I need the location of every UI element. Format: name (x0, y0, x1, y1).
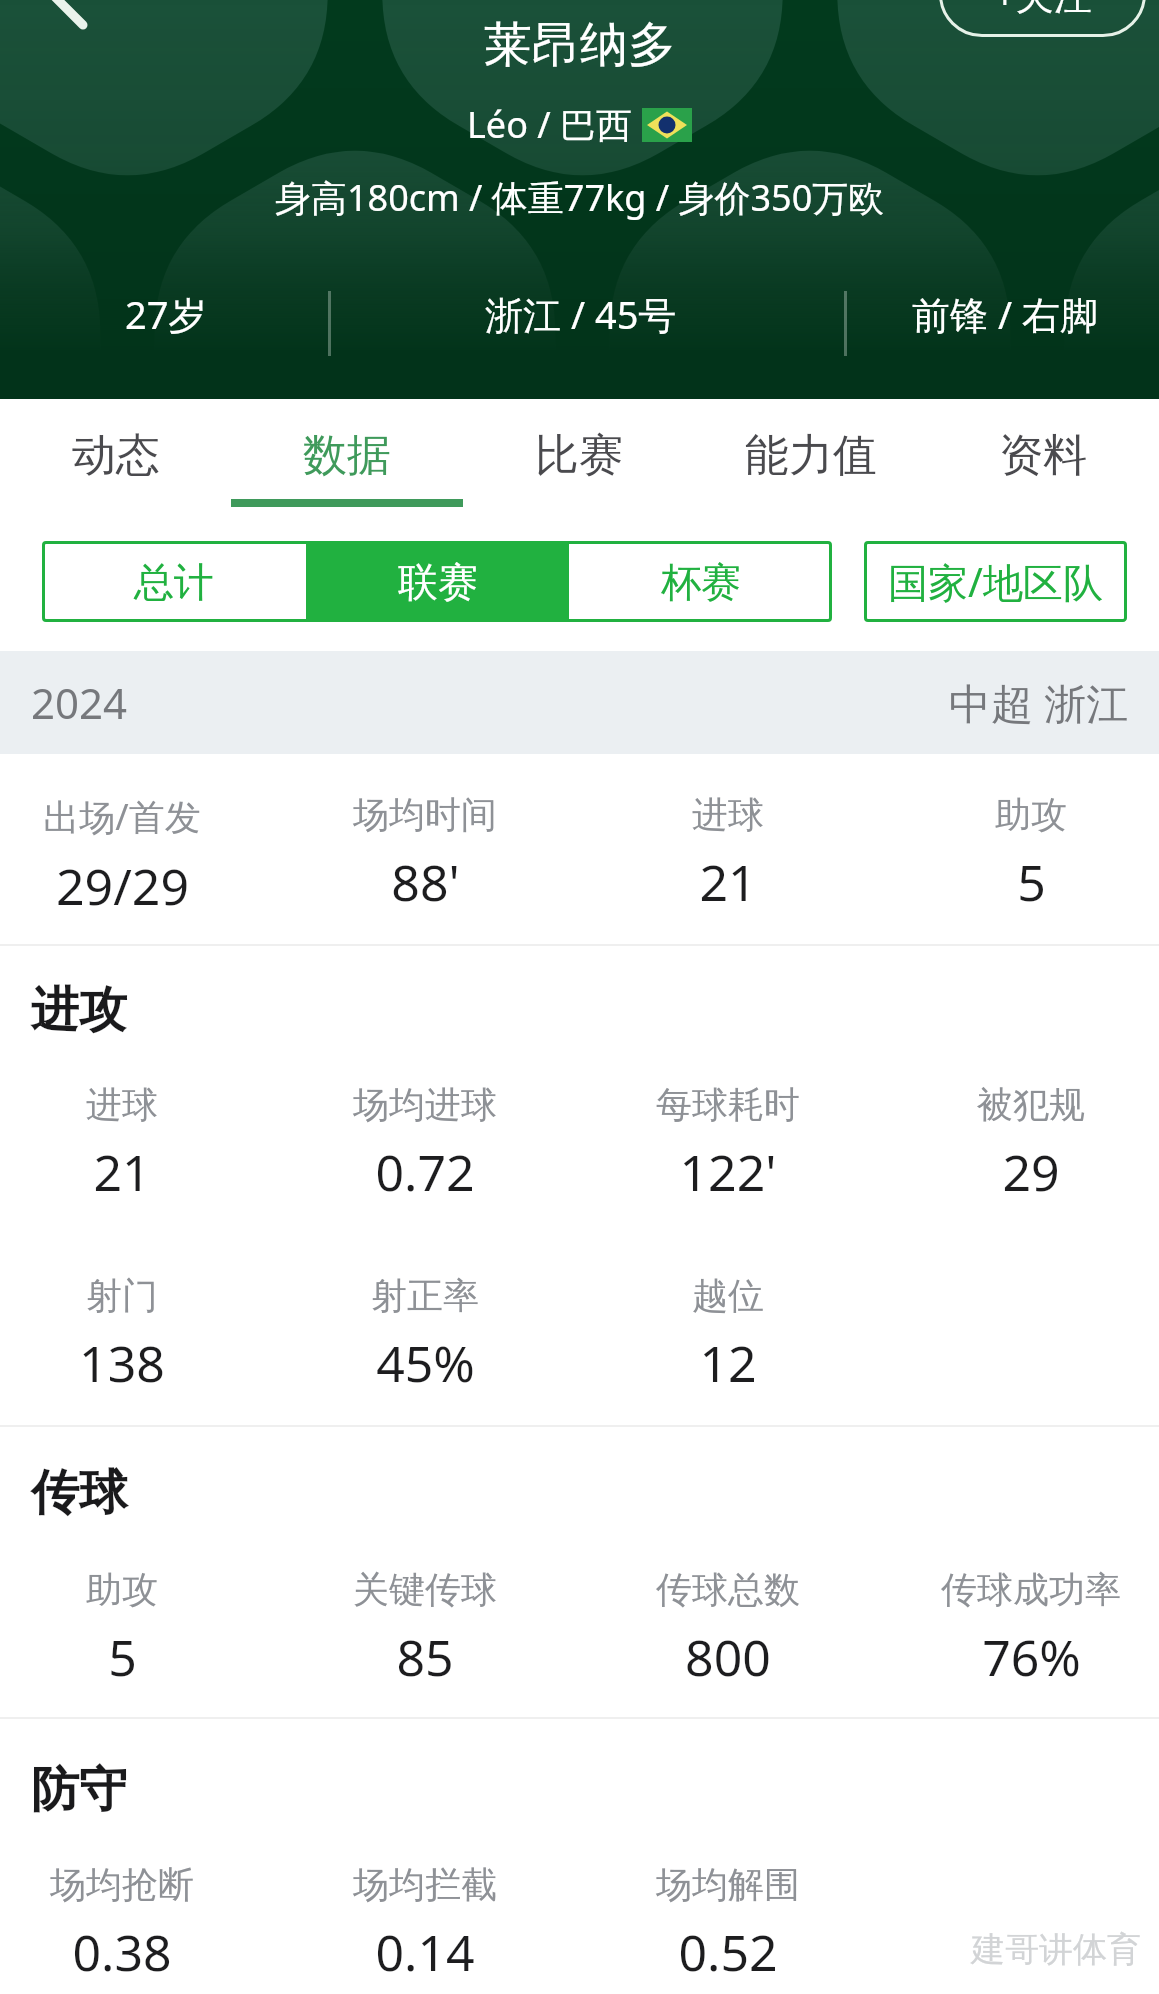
staticText: 0.14 (375, 1918, 475, 1986)
button[interactable]: 数据 (231, 399, 463, 511)
staticText: 12 (699, 1329, 757, 1397)
button[interactable]: 杯赛 (569, 541, 832, 622)
staticText: 数据 (303, 428, 391, 483)
staticText: 138 (79, 1329, 165, 1397)
staticText: 进球 (692, 792, 764, 837)
staticText: 进球 (86, 1082, 158, 1127)
button[interactable]: 国家/地区队 (864, 541, 1127, 622)
staticText: 防守 (31, 1760, 127, 1820)
staticText: 2024 (31, 674, 128, 731)
staticText: 27岁 (125, 288, 207, 340)
staticText: 88' (391, 848, 460, 916)
staticText: 场均抢断 (50, 1862, 194, 1907)
staticText: 建哥讲体育 (971, 1928, 1141, 1971)
staticText: 关键传球 (353, 1567, 497, 1612)
staticText: 场均拦截 (353, 1862, 497, 1907)
staticText: 助攻 (86, 1567, 158, 1612)
staticText: +关注 (994, 0, 1092, 20)
staticText: 85 (396, 1623, 454, 1691)
staticText: 资料 (999, 428, 1087, 483)
staticText: 122' (679, 1138, 777, 1206)
staticText: 中超 浙江 (949, 674, 1128, 731)
staticText: 杯赛 (661, 557, 741, 607)
staticText: 76% (982, 1623, 1081, 1691)
staticText: 5 (108, 1623, 137, 1691)
staticText: 助攻 (995, 792, 1067, 837)
staticText: 越位 (692, 1273, 764, 1318)
button[interactable]: 联赛 (306, 541, 569, 622)
button[interactable]: +关注 (939, 0, 1146, 37)
button[interactable]: 总计 (42, 541, 306, 622)
button[interactable]: 资料 (927, 399, 1159, 511)
staticText: 21 (699, 848, 757, 916)
staticText: 总计 (134, 557, 214, 607)
staticText: 800 (685, 1623, 771, 1691)
button[interactable]: Back (10, 0, 120, 28)
staticText: 浙江 / 45号 (485, 288, 677, 340)
staticText: 21 (93, 1138, 151, 1206)
staticText: 联赛 (398, 557, 478, 607)
staticText: 出场/首发 (43, 792, 201, 841)
staticText: 传球 (31, 1463, 127, 1523)
staticText: 能力值 (745, 428, 877, 483)
staticText: Léo / 巴西 (467, 100, 642, 149)
staticText: 动态 (72, 428, 160, 483)
staticText: 前锋 / 右脚 (912, 288, 1098, 340)
staticText: 射正率 (371, 1273, 479, 1318)
staticText: 5 (1017, 848, 1046, 916)
staticText: 身高180cm / 体重77kg / 身价350万欧 (275, 173, 885, 222)
staticText: 进攻 (31, 980, 127, 1040)
staticText: 射门 (86, 1273, 158, 1318)
button[interactable]: 动态 (0, 399, 231, 511)
staticText: 场均进球 (353, 1082, 497, 1127)
staticText: 场均解围 (656, 1862, 800, 1907)
staticText: 每球耗时 (656, 1082, 800, 1127)
staticText: 莱昂纳多 (484, 15, 676, 75)
staticText: 0.72 (375, 1138, 475, 1206)
staticText: 29/29 (56, 852, 189, 920)
staticText: 29 (1002, 1138, 1060, 1206)
button[interactable]: 比赛 (463, 399, 695, 511)
staticText: 国家/地区队 (888, 554, 1103, 609)
staticText: 比赛 (535, 428, 623, 483)
staticText: 传球总数 (656, 1567, 800, 1612)
staticText: 45% (376, 1329, 475, 1397)
staticText: 传球成功率 (941, 1567, 1121, 1612)
staticText: 场均时间 (353, 792, 497, 837)
staticText: 0.52 (678, 1918, 778, 1986)
staticText: 0.38 (72, 1918, 172, 1986)
button[interactable]: 能力值 (695, 399, 927, 511)
staticText: 被犯规 (977, 1082, 1085, 1127)
